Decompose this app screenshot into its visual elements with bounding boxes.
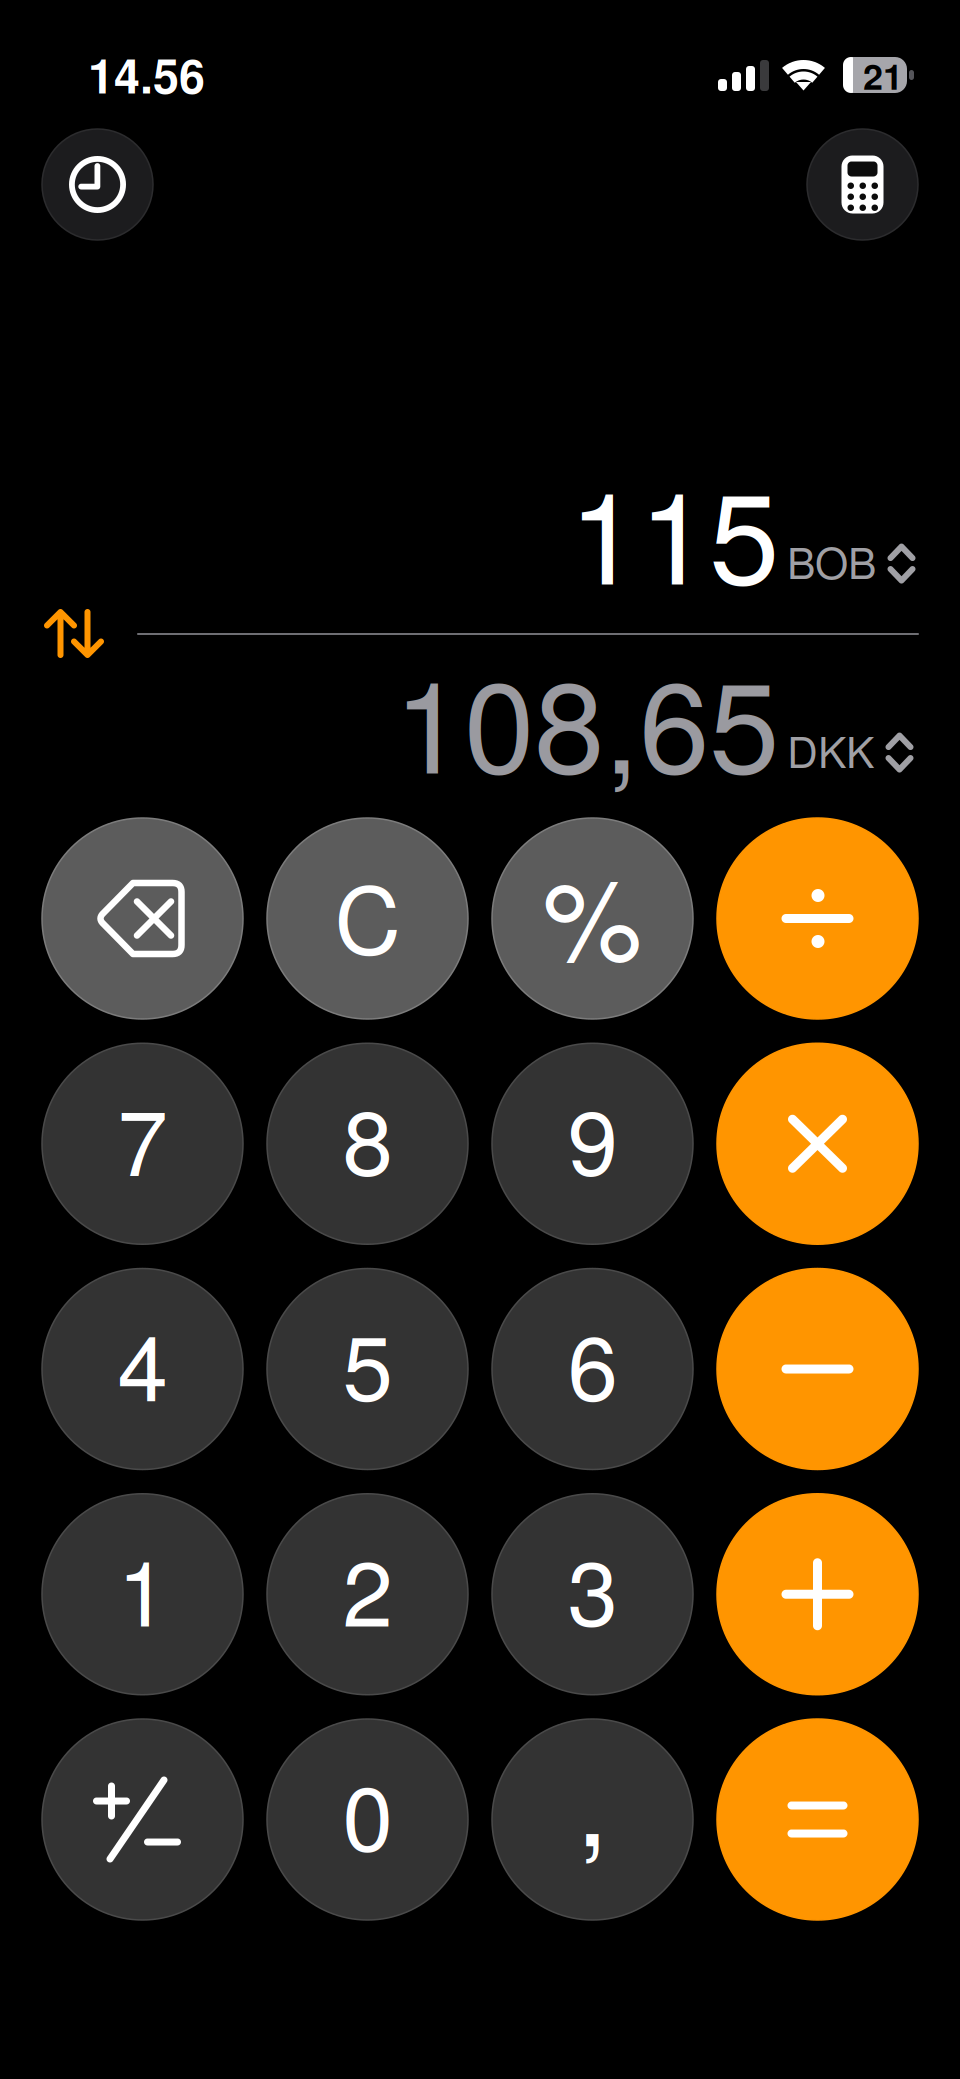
staticText: 5 <box>342 1297 392 1427</box>
staticText: % <box>542 832 642 993</box>
staticText: 21 <box>863 49 903 101</box>
button[interactable]: Plus minus <box>42 1719 243 1920</box>
button[interactable]: C <box>267 818 468 1019</box>
button[interactable]: Equals <box>717 1719 918 1920</box>
staticText: 115 <box>569 439 779 620</box>
button[interactable]: Swap currencies <box>45 609 103 658</box>
button[interactable]: Plus <box>717 1494 918 1695</box>
button[interactable]: Delete <box>42 818 243 1019</box>
button[interactable]: % <box>492 818 693 1019</box>
button[interactable]: Calculator <box>807 129 918 240</box>
button[interactable]: 9 <box>492 1043 693 1244</box>
button[interactable]: 8 <box>267 1043 468 1244</box>
button[interactable]: 6 <box>492 1268 693 1469</box>
button[interactable]: Divide <box>717 818 918 1019</box>
button[interactable]: 0 <box>267 1719 468 1920</box>
staticText: 1 <box>117 1522 167 1652</box>
staticText: BOB <box>787 530 876 591</box>
button[interactable]: History <box>42 129 153 240</box>
button[interactable]: Multiply <box>717 1043 918 1244</box>
staticText: 14.56 <box>88 41 205 108</box>
staticText: 2 <box>342 1522 392 1652</box>
staticText: 9 <box>567 1072 617 1202</box>
staticText: 6 <box>567 1297 617 1427</box>
staticText: , <box>576 1711 609 1879</box>
staticText: DKK <box>787 719 874 780</box>
button[interactable]: DKK <box>787 719 914 780</box>
button[interactable]: Minus <box>717 1268 918 1469</box>
staticText: C <box>334 849 400 980</box>
staticText: 8 <box>342 1072 392 1202</box>
button[interactable]: 3 <box>492 1494 693 1695</box>
staticText: 0 <box>342 1748 392 1877</box>
staticText: 7 <box>117 1072 167 1202</box>
button[interactable]: 5 <box>267 1268 468 1469</box>
staticText: 3 <box>567 1522 617 1652</box>
button[interactable]: , <box>492 1719 693 1920</box>
button[interactable]: 1 <box>42 1494 243 1695</box>
staticText: 108,65 <box>394 628 779 809</box>
button[interactable]: BOB <box>787 530 916 591</box>
staticText: 4 <box>117 1297 167 1427</box>
button[interactable]: 4 <box>42 1268 243 1469</box>
button[interactable]: 7 <box>42 1043 243 1244</box>
button[interactable]: 2 <box>267 1494 468 1695</box>
